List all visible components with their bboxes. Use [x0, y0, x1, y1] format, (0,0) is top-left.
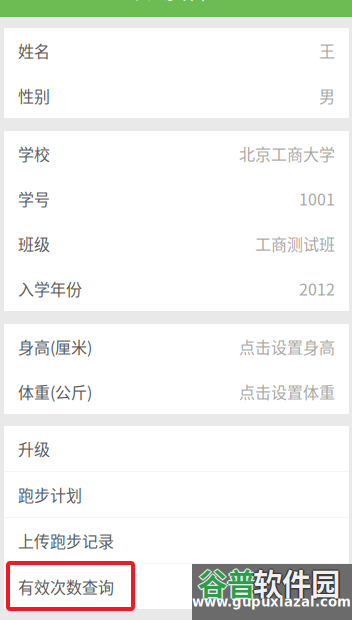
button[interactable]: 体重(公斤): [4, 369, 349, 414]
staticText: 点击设置身高: [239, 335, 335, 358]
button[interactable]: 跑步计划: [4, 472, 349, 517]
staticText: 身高(厘米): [18, 335, 92, 358]
staticText: 软件园: [252, 561, 339, 603]
staticText: 点击设置体重: [239, 380, 335, 403]
staticText: 王: [319, 39, 335, 62]
staticText: 北京工商大学: [239, 142, 335, 165]
staticText: 男: [319, 84, 335, 107]
staticText: 谷普: [198, 561, 256, 603]
staticText: 工商测试班: [255, 232, 335, 255]
staticText: 跑步计划: [18, 483, 82, 506]
button[interactable]: 上传跑步记录: [4, 518, 349, 563]
staticText: 个人资料: [127, 0, 207, 5]
staticText: 谷普: [198, 560, 256, 602]
staticText: 学校: [18, 142, 50, 165]
button[interactable]: 入学年份: [4, 266, 349, 311]
staticText: 班级: [18, 232, 50, 255]
button[interactable]: 升级: [4, 426, 349, 471]
staticText: 性别: [18, 84, 50, 107]
staticText: 体重(公斤): [18, 380, 92, 403]
button[interactable]: 姓名: [4, 28, 349, 73]
staticText: 上传跑步记录: [18, 529, 114, 552]
staticText: 学号: [18, 187, 50, 210]
button[interactable]: 身高(厘米): [4, 324, 349, 369]
button[interactable]: 学号: [4, 176, 349, 221]
button[interactable]: 学校: [4, 131, 349, 176]
staticText: 谷普: [199, 561, 257, 603]
staticText: 升级: [18, 437, 50, 460]
staticText: 软件园: [253, 561, 340, 603]
staticText: 谷普: [197, 561, 255, 603]
staticText: 谷普: [198, 562, 256, 605]
staticText: 入学年份: [18, 277, 82, 300]
staticText: 软件园: [253, 560, 340, 602]
staticText: 软件园: [254, 561, 341, 603]
staticText: 姓名: [18, 39, 50, 62]
staticText: 有效次数查询: [18, 575, 114, 598]
button[interactable]: 有效次数查询: [4, 564, 349, 609]
button[interactable]: 班级: [4, 221, 349, 266]
staticText: 1001: [299, 187, 335, 210]
staticText: www.gupuxlazal.com: [192, 594, 351, 609]
staticText: 2012: [299, 277, 335, 300]
button[interactable]: 性别: [4, 73, 349, 118]
staticText: 软件园: [253, 562, 340, 605]
